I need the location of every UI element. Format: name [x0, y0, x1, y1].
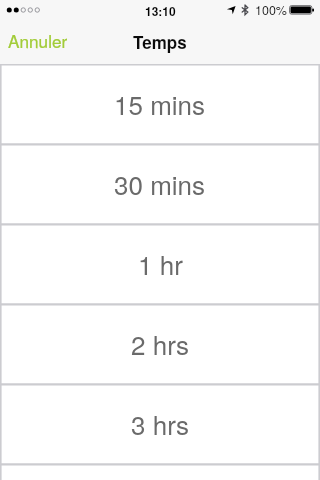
button[interactable]: 2 hrs [0, 304, 320, 384]
button[interactable]: Annuler [0, 20, 80, 64]
staticText: Annuler [8, 28, 68, 52]
button[interactable]: 15 mins [0, 64, 320, 144]
button[interactable]: 1 hr [0, 224, 320, 304]
staticText: Temps [133, 30, 187, 54]
button[interactable]: 30 mins [0, 144, 320, 224]
staticText: 100% [255, 1, 287, 19]
staticText: 2 hrs [131, 325, 189, 362]
staticText: 1 hr [138, 245, 183, 282]
button[interactable]: 3 hrs [0, 384, 320, 464]
staticText: 15 mins [114, 85, 206, 122]
staticText: 30 mins [114, 165, 206, 202]
button[interactable]: 6 hrs [0, 464, 320, 480]
staticText: 13:10 [145, 2, 176, 19]
staticText: 3 hrs [131, 405, 189, 442]
